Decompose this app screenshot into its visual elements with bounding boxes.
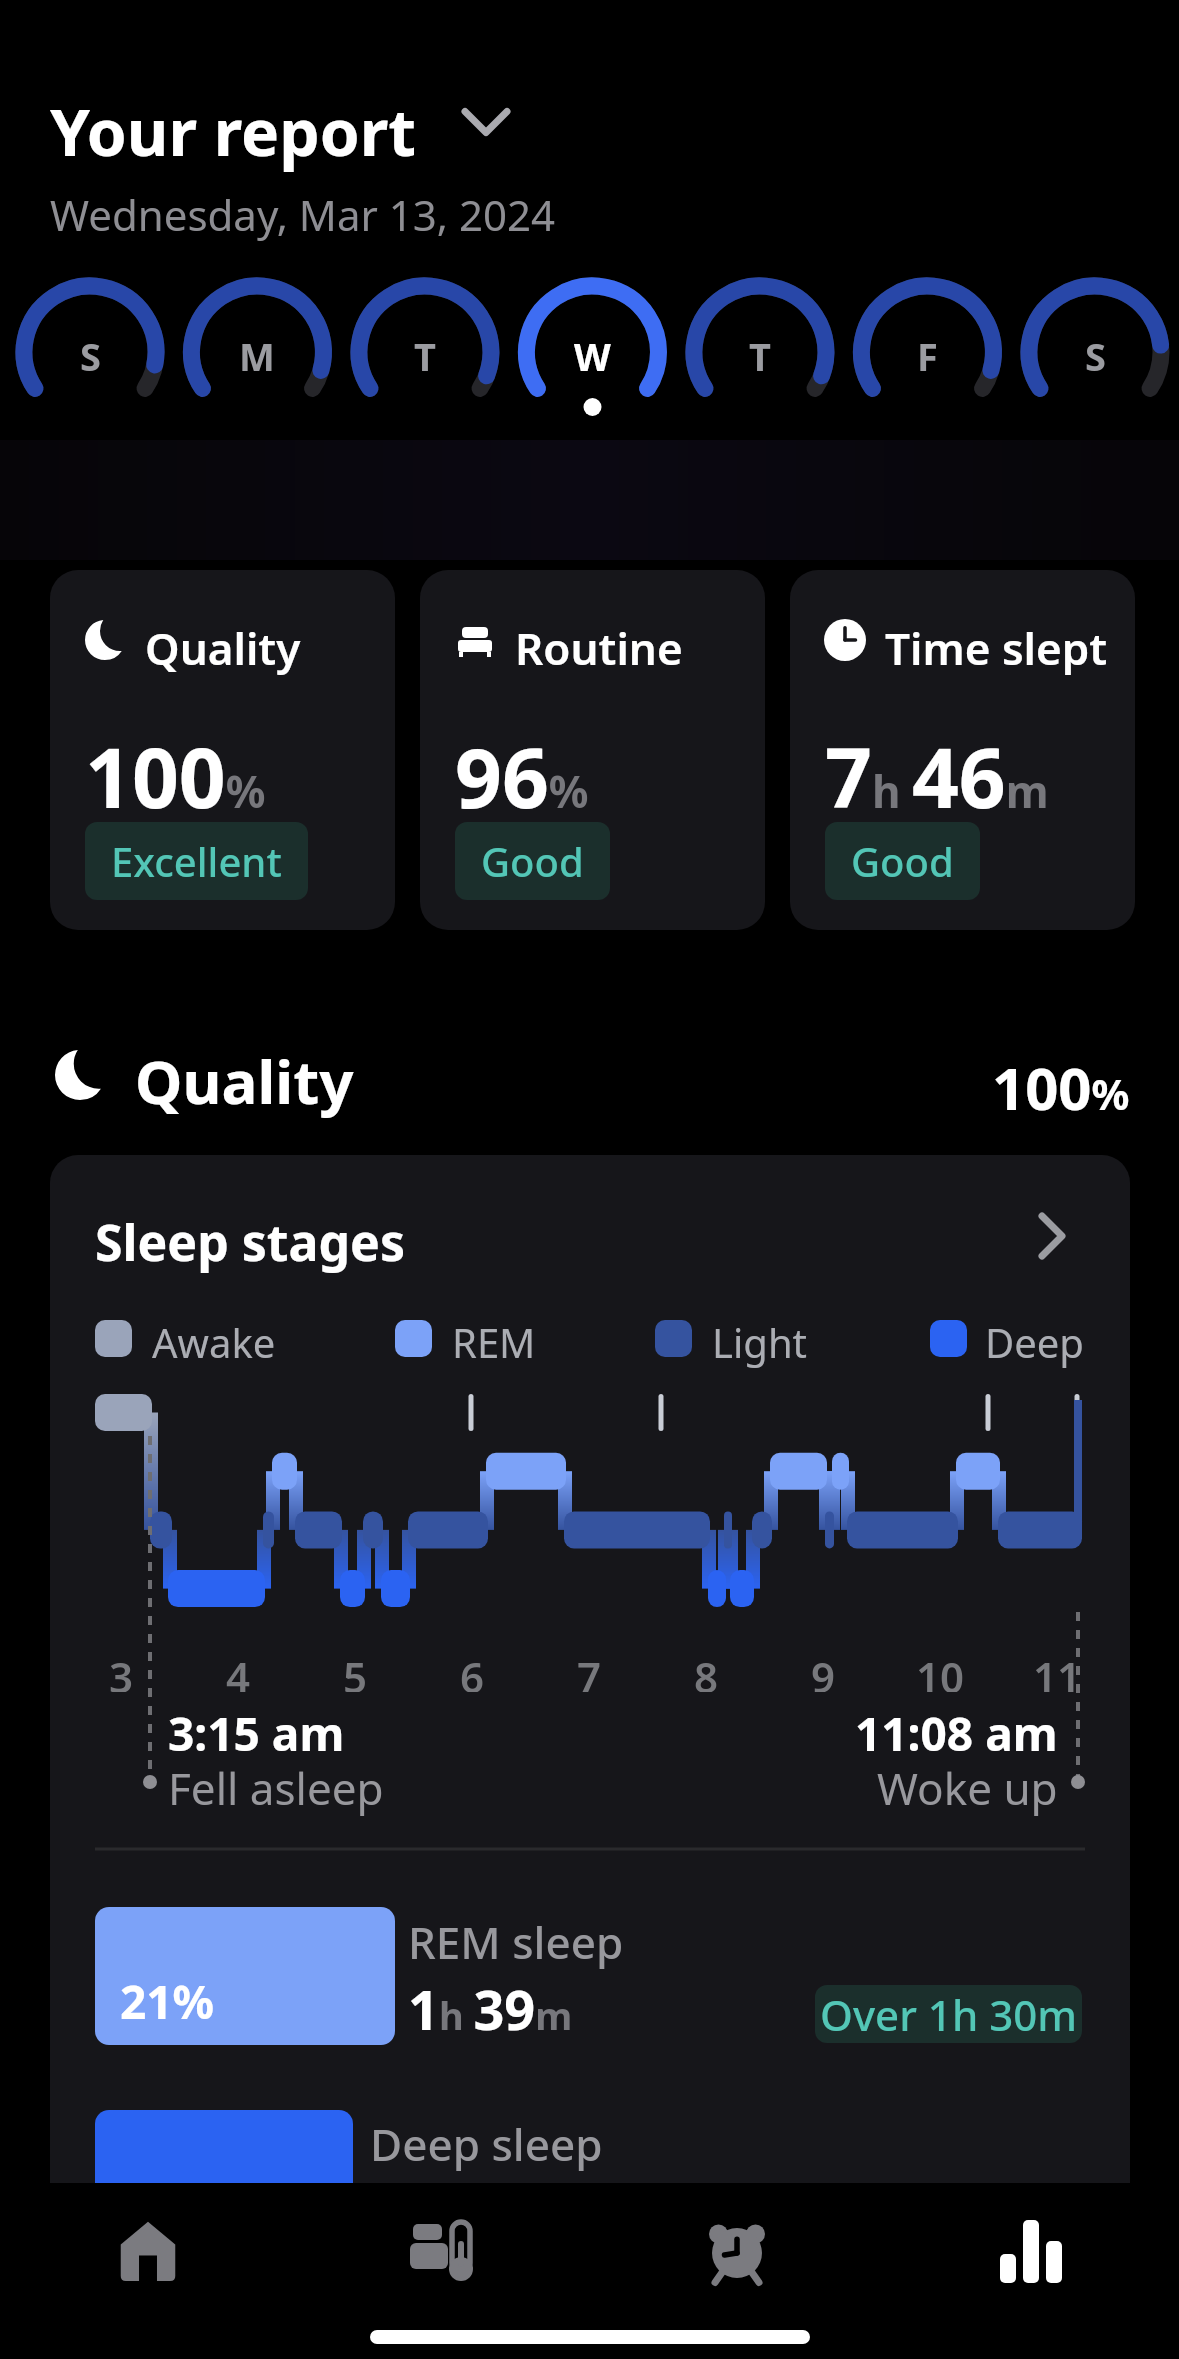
staticText: Wednesday, Mar 13, 2024 [50,186,556,243]
button[interactable]: T [700,328,820,384]
staticText: W [574,330,611,382]
staticText: 7 [577,1648,602,1692]
staticText: 11:08 am [855,1702,1058,1765]
staticText: Awake [152,1315,276,1369]
staticText: 9 [811,1648,836,1692]
button[interactable] [0,2183,294,2359]
staticText: Time slept [885,618,1108,678]
button[interactable] [884,2183,1179,2359]
staticText: 1h 39m [408,1972,573,2046]
staticText: 11 [1033,1648,1082,1692]
button[interactable]: Routine [420,570,765,930]
staticText: 100% [992,1048,1130,1127]
staticText: Your report [50,88,417,175]
staticText: 8 [694,1648,719,1692]
staticText: REM sleep [408,1912,624,1972]
button[interactable]: S [1035,328,1155,384]
button[interactable]: F [867,328,987,384]
staticText: 96% [455,720,589,832]
staticText: 5 [343,1648,368,1692]
staticText: Light [712,1315,808,1369]
staticText: 3:15 am [168,1702,345,1765]
staticText: 6 [460,1648,485,1692]
button[interactable]: S [30,328,150,384]
staticText: F [917,330,938,382]
button[interactable]: T [365,328,485,384]
staticText: Excellent [111,834,282,888]
staticText: M [239,330,275,382]
staticText: Quality [145,618,301,678]
staticText: 21% [120,1970,215,2033]
button[interactable] [294,2183,589,2359]
staticText: T [749,330,771,382]
staticText: Fell asleep [168,1758,384,1818]
staticText: Deep [985,1315,1084,1369]
staticText: T [414,330,436,382]
staticText: S [1085,330,1106,382]
staticText: S [80,330,101,382]
staticText: Over 1h 30m [820,1986,1077,2043]
button[interactable]: Quality [50,570,395,930]
staticText: Woke up [877,1758,1058,1818]
staticText: 10 [916,1648,965,1692]
staticText: Sleep stages [95,1208,406,1276]
staticText: 3 [109,1648,134,1692]
button[interactable]: M [197,328,317,384]
button[interactable] [589,2183,884,2359]
button[interactable]: W [532,328,652,384]
staticText: Deep sleep [370,2114,603,2174]
button[interactable]: Time slept [790,570,1135,930]
staticText: 100% [85,720,266,832]
staticText: Routine [515,618,683,678]
staticText: Good [481,834,584,888]
staticText: 4 [226,1648,251,1692]
staticText: Good [851,834,954,888]
staticText: REM [452,1315,536,1369]
staticText: Quality [135,1040,354,1122]
staticText: 7h 46m [825,720,1049,832]
button[interactable] [50,1155,1130,2255]
